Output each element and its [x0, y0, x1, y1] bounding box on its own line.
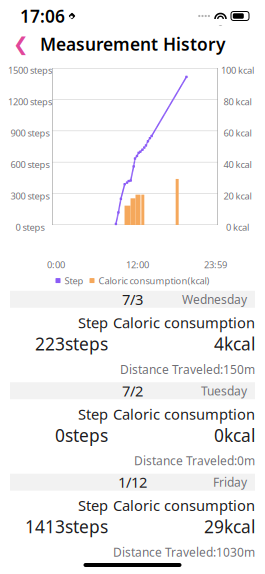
staticText: 7/3 [122, 290, 143, 309]
staticText: 223steps [35, 332, 108, 355]
button[interactable]: 10/26 [10, 565, 255, 574]
staticText: 300 steps [10, 190, 49, 202]
staticText: Tuesday [201, 383, 247, 399]
staticText: 23:59 [204, 258, 227, 271]
button[interactable]: 7/2 [10, 382, 255, 399]
staticText: Caloric consumption [113, 313, 255, 332]
staticText: Distance Traveled:1030m [113, 544, 255, 560]
staticText: 0 kcal [226, 221, 249, 233]
button[interactable]: Back [6, 31, 36, 57]
staticText: 0:00 [47, 258, 65, 271]
staticText: 20 kcal [223, 190, 251, 202]
staticText: 80 kcal [223, 95, 251, 108]
staticText: Step [78, 496, 108, 515]
staticText: 7/2 [122, 381, 143, 400]
staticText: Step [78, 313, 108, 332]
staticText: Measurement History [40, 32, 225, 55]
staticText: Caloric consumption(kcal) [98, 274, 209, 287]
button[interactable]: 7/3 [10, 291, 255, 308]
staticText: 29kcal [204, 515, 255, 538]
staticText: 1/12 [118, 472, 147, 492]
staticText: Step [64, 274, 83, 287]
staticText: Step [78, 404, 108, 424]
staticText: 4kcal [214, 332, 255, 355]
staticText: ❮ [13, 33, 29, 55]
staticText: 0 steps [15, 221, 44, 233]
staticText: Wednesday [182, 291, 247, 307]
staticText: 600 steps [10, 158, 49, 171]
staticText: 1500 steps [8, 64, 52, 76]
staticText: 12:00 [126, 258, 149, 271]
staticText: Caloric consumption [113, 496, 255, 515]
staticText: 100 kcal [221, 64, 254, 76]
staticText: 40 kcal [223, 158, 251, 171]
staticText: Distance Traveled:150m [120, 361, 255, 377]
staticText: Distance Traveled:0m [134, 453, 255, 469]
staticText: Friday [213, 474, 247, 490]
staticText: 60 kcal [223, 127, 251, 139]
staticText: 0steps [55, 424, 108, 447]
staticText: 17:06 [20, 4, 65, 27]
staticText: 1200 steps [8, 95, 52, 108]
staticText: Caloric consumption [113, 404, 255, 424]
staticText: 0kcal [214, 424, 255, 447]
staticText: 900 steps [10, 127, 49, 139]
staticText: 10/26 [114, 564, 151, 574]
staticText: 1413steps [25, 515, 108, 538]
button[interactable]: 1/12 [10, 474, 255, 491]
